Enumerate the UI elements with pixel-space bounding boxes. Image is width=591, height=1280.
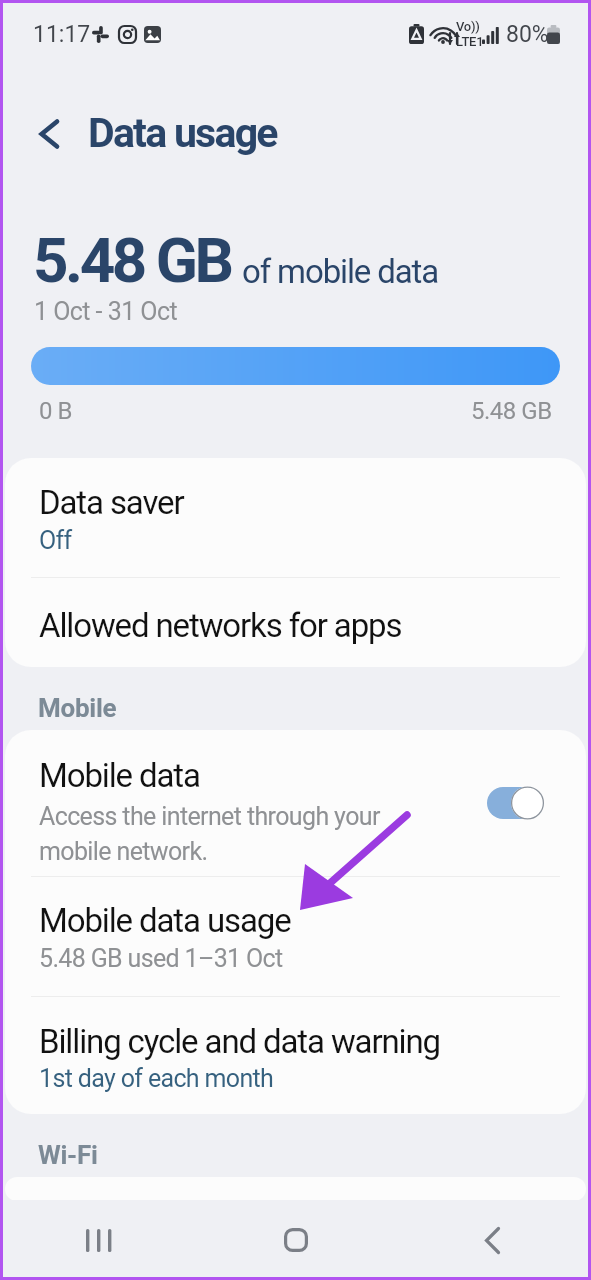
staticText: of mobile data (242, 252, 439, 291)
button[interactable]: Home (197, 1200, 394, 1280)
staticText: 11:17 (33, 21, 91, 48)
staticText: Mobile (38, 693, 117, 723)
staticText: Billing cycle and data warning (39, 1022, 440, 1061)
staticText: 5.48 GB used 1–31 Oct (39, 944, 283, 973)
button[interactable]: Allowed networks for apps (5, 578, 586, 667)
staticText: 1st day of each month (39, 1064, 274, 1093)
staticText: Access the internet through your (39, 802, 380, 831)
button[interactable]: Navigate up (27, 111, 73, 157)
staticText: mobile network. (39, 837, 208, 866)
staticText: Wi-Fi (38, 1140, 98, 1170)
button[interactable]: Back (394, 1200, 591, 1280)
staticText: 5.48 GB (33, 224, 231, 297)
staticText: 80% (506, 21, 549, 48)
button[interactable]: Recent apps (0, 1200, 197, 1280)
staticText: Mobile data usage (39, 901, 291, 940)
staticText: Allowed networks for apps (39, 606, 402, 645)
staticText: Data saver (39, 483, 184, 522)
staticText: 1 Oct - 31 Oct (34, 297, 178, 326)
staticText: LTE1 (456, 34, 484, 49)
staticText: Off (39, 526, 72, 555)
button[interactable]: Mobile data usage (5, 877, 586, 996)
staticText: 5.48 GB (471, 397, 552, 425)
button[interactable]: Data saver (5, 458, 586, 577)
staticText: Vo)) (456, 19, 480, 34)
button[interactable]: Mobile data (487, 785, 545, 821)
staticText: Data usage (88, 109, 277, 157)
staticText: Mobile data (39, 756, 200, 795)
button[interactable]: Billing cycle and data warning (5, 997, 586, 1114)
staticText: 0 B (39, 397, 72, 425)
button[interactable]: Mobile data (5, 730, 586, 876)
